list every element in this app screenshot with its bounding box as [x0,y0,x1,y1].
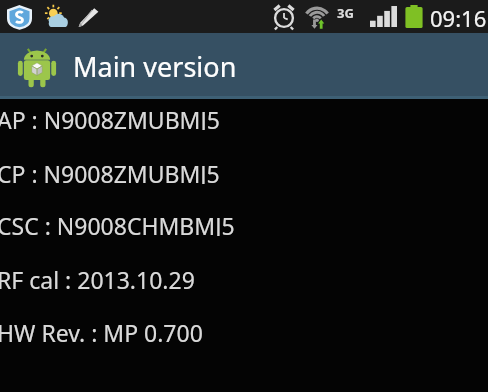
other: Battery level [404,5,424,28]
staticText: HW Rev. : MP 0.700 [0,317,203,343]
other: Android version icon [14,43,60,89]
button[interactable]: Android version icon [0,33,488,99]
other: Note notification [75,5,101,29]
button[interactable]: HW Rev. : MP 0.700 [0,317,488,343]
staticText: CSC : N9008CHMBMJ5 [0,210,235,236]
other: Wi-Fi connected [303,4,331,29]
other: Mobile signal strength [370,6,397,27]
button[interactable]: RF cal : 2013.10.29 [0,264,488,290]
other: Weather notification [42,5,69,29]
other: Security app notification [7,5,32,29]
staticText: AP : N9008ZMUBMJ5 [0,104,220,130]
staticText: 09:16 [430,3,487,33]
button[interactable]: AP : N9008ZMUBMJ5 [0,104,488,130]
other: Alarm set [272,4,296,29]
staticText: Main version [73,48,237,85]
staticText: RF cal : 2013.10.29 [0,264,195,290]
button[interactable]: CP : N9008ZMUBMJ5 [0,158,488,184]
staticText: 3G [337,4,354,22]
staticText: CP : N9008ZMUBMJ5 [0,158,220,184]
button[interactable]: CSC : N9008CHMBMJ5 [0,210,488,236]
